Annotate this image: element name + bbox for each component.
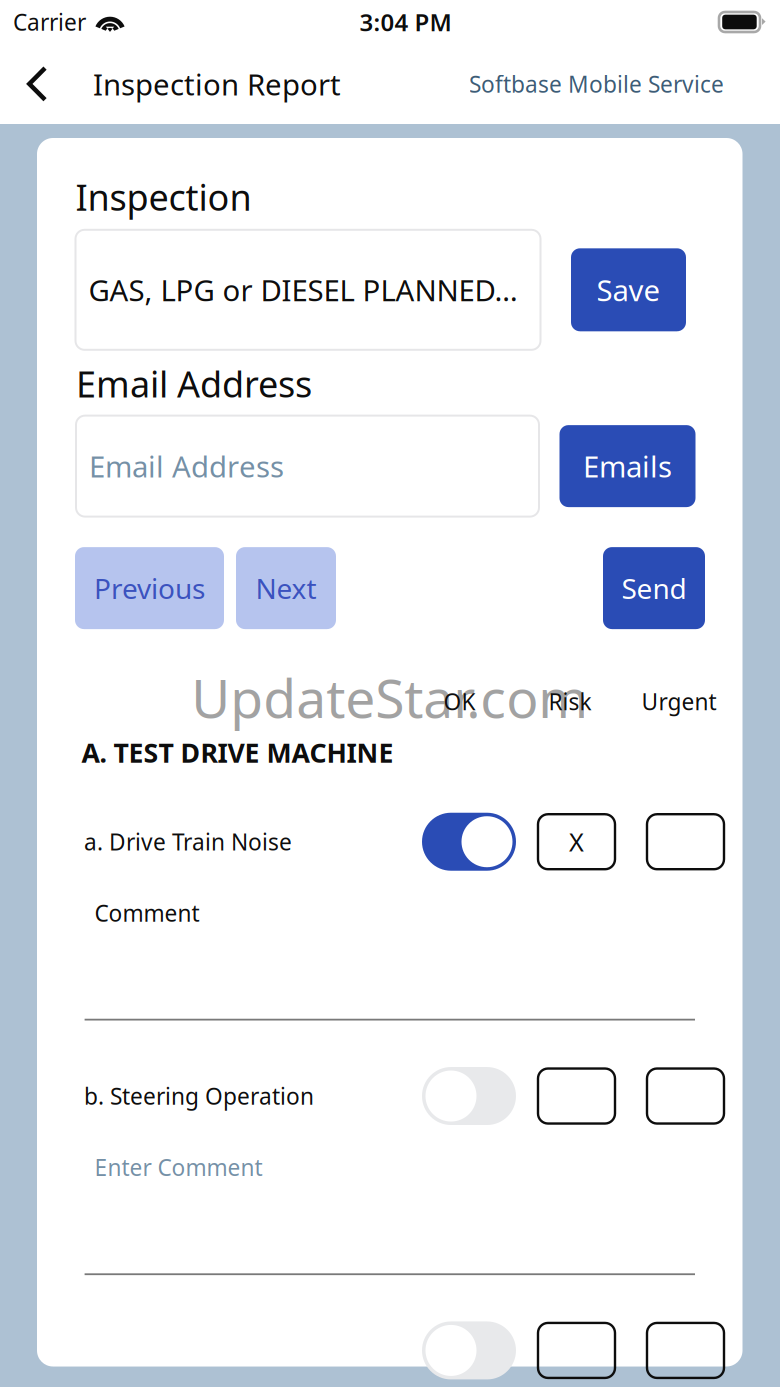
- staticText: Emails: [583, 447, 672, 486]
- staticText: Send: [621, 569, 686, 607]
- button[interactable]: Emails: [559, 425, 695, 507]
- button[interactable]: Previous: [75, 547, 224, 629]
- button[interactable]: Not selected: [647, 1323, 724, 1378]
- staticText: Comment: [94, 898, 199, 928]
- button[interactable]: Not selected: [647, 814, 724, 869]
- staticText: Carrier: [13, 7, 86, 37]
- staticText: X: [569, 825, 584, 858]
- button[interactable]: Back: [0, 44, 93, 124]
- staticText: Risk: [548, 686, 591, 717]
- staticText: Softbase Mobile Service: [469, 69, 724, 99]
- staticText: b. Steering Operation: [84, 1081, 314, 1111]
- button[interactable]: Not selected: [647, 1068, 724, 1123]
- staticText: OK: [443, 686, 475, 717]
- staticText: Previous: [94, 569, 205, 607]
- button[interactable]: Softbase Mobile Service: [469, 44, 780, 124]
- staticText: Inspection: [75, 173, 251, 221]
- staticText: A. TEST DRIVE MACHINE: [81, 735, 393, 770]
- button[interactable]: Email Address: [76, 416, 539, 517]
- staticText: GAS, LPG or DIESEL PLANNED…: [88, 270, 517, 309]
- button[interactable]: Not selected: [538, 1068, 615, 1123]
- staticText: Next: [255, 569, 316, 607]
- button[interactable]: Toggle off: [422, 1067, 516, 1125]
- button[interactable]: Not selected: [538, 1323, 615, 1378]
- button[interactable]: GAS, LPG or DIESEL PLANNED…: [75, 230, 540, 350]
- staticText: Save: [596, 270, 660, 309]
- button[interactable]: Save: [571, 248, 686, 331]
- button[interactable]: Next: [236, 547, 336, 629]
- button[interactable]: Send: [603, 547, 705, 629]
- staticText: UpdateStar.com: [191, 662, 588, 733]
- staticText: Urgent: [641, 686, 716, 717]
- staticText: Email Address: [89, 447, 284, 486]
- button[interactable]: Toggle off: [422, 1321, 516, 1379]
- button[interactable]: Toggle on: [422, 813, 516, 871]
- staticText: Enter Comment: [94, 1152, 262, 1182]
- button[interactable]: Selected: [538, 814, 615, 869]
- staticText: a. Drive Train Noise: [84, 827, 292, 857]
- staticText: Inspection Report: [93, 64, 341, 103]
- staticText: Email Address: [76, 359, 312, 407]
- staticText: 3:04 PM: [359, 6, 451, 38]
